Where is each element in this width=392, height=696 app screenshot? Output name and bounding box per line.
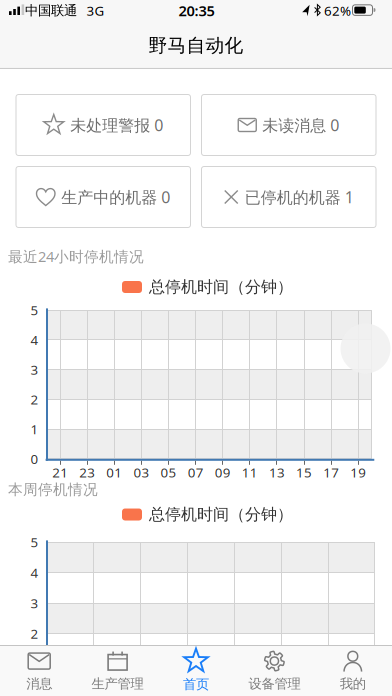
staticText: 消息 [26,676,52,692]
staticText: 20:35 [178,1,214,20]
staticText: 中国联通 [25,2,77,19]
button[interactable]: 我的 [314,646,392,695]
staticText: 23 [79,463,95,481]
staticText: 07 [188,463,204,481]
staticText: 本周停机情况 [8,480,98,498]
staticText: 0 [30,450,38,468]
staticText: 13 [269,463,285,481]
staticText: 4 [30,331,38,349]
staticText: 未读消息 0 [262,114,339,136]
staticText: 3G [86,2,104,19]
staticText: 17 [323,463,339,481]
staticText: 09 [215,463,231,481]
staticText: 我的 [340,676,366,692]
button[interactable]: 生产管理 [78,646,157,695]
staticText: 05 [161,463,177,481]
staticText: 5 [30,533,38,551]
staticText: 01 [106,463,122,481]
staticText: 4 [30,564,38,581]
staticText: 15 [296,463,312,481]
button[interactable]: 总停机时间（分钟） [122,277,293,297]
staticText: 总停机时间（分钟） [149,277,293,297]
button[interactable]: 悬浮助手 [340,323,390,373]
staticText: 未处理警报 0 [70,114,163,136]
staticText: 3 [30,594,38,612]
button[interactable]: 未处理警报 0 [16,94,190,155]
staticText: 已停机的机器 1 [245,186,354,208]
staticText: 11 [242,463,258,481]
staticText: 5 [30,301,38,319]
staticText: 总停机时间（分钟） [149,505,293,524]
button[interactable]: 总停机时间（分钟） [122,505,293,524]
staticText: 首页 [183,676,209,692]
staticText: 03 [133,463,149,481]
staticText: 2 [30,390,38,408]
staticText: 生产管理 [92,676,144,692]
staticText: 21 [52,463,68,481]
button[interactable]: 首页 [157,646,235,695]
staticText: 野马自动化 [148,34,243,57]
button[interactable]: 消息 [0,646,78,695]
button[interactable]: 未读消息 0 [201,94,376,155]
staticText: 设备管理 [248,676,300,692]
staticText: 生产中的机器 0 [61,186,170,208]
staticText: 19 [350,463,366,481]
staticText: 最近24小时停机情况 [8,246,144,266]
button[interactable]: 已停机的机器 1 [201,166,376,227]
staticText: 2 [30,625,38,642]
staticText: 1 [30,420,38,438]
staticText: 62% [324,2,351,19]
button[interactable]: 生产中的机器 0 [16,166,190,227]
staticText: 3 [30,361,38,378]
button[interactable]: 设备管理 [235,646,314,695]
